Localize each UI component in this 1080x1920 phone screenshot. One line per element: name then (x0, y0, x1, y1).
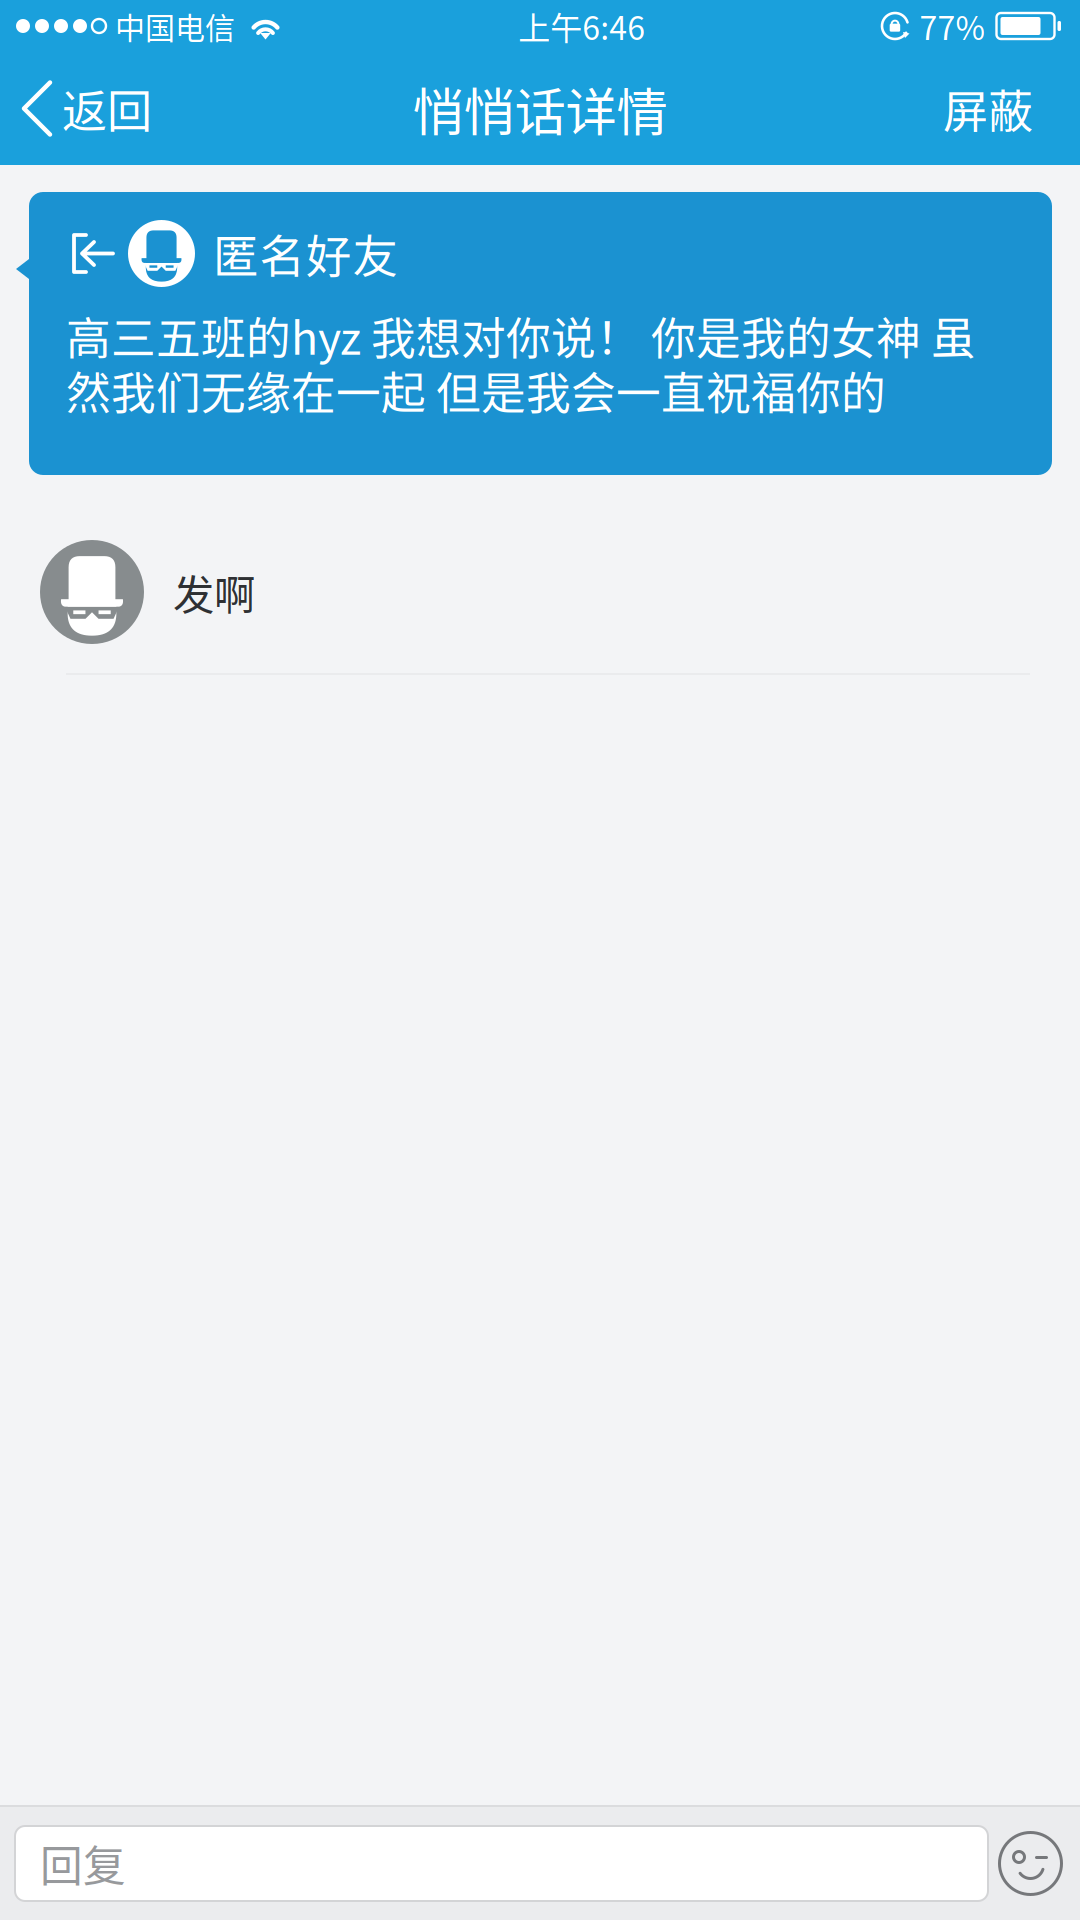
button[interactable]: 屏蔽 (915, 52, 1080, 165)
staticText: 上午6:46 (518, 3, 645, 49)
button[interactable]: 回复 (15, 1826, 988, 1901)
staticText: 匿名好友 (213, 221, 397, 286)
staticText: 返回 (62, 76, 152, 141)
staticText: 77% (919, 3, 984, 49)
button[interactable]: 发啊 (0, 511, 1080, 675)
staticText: 屏蔽 (943, 76, 1033, 141)
staticText: 然我们无缘在一起 但是我会一直祝福你的 (66, 358, 886, 422)
staticText: 高三五班的hyz 我想对你说！ 你是我的女神 虽 (66, 303, 976, 368)
button[interactable]: 返回 (0, 52, 172, 165)
staticText: 回复 (40, 1833, 126, 1894)
staticText: 悄悄话详情 (412, 71, 667, 146)
staticText: 中国电信 (115, 4, 235, 48)
staticText: 发啊 (173, 562, 255, 622)
button[interactable]: Emoji (988, 1816, 1073, 1911)
